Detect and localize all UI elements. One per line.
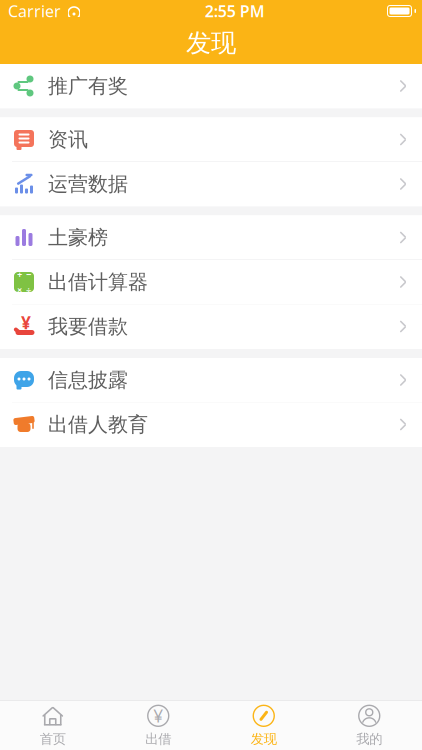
staticText: 土豪榜 — [48, 225, 108, 250]
staticText: 出借 — [145, 731, 171, 747]
staticText: ÷ — [26, 283, 31, 296]
button[interactable]: 信息披露 — [0, 358, 422, 402]
button[interactable]: 土豪榜 — [0, 215, 422, 260]
staticText: 信息披露 — [48, 368, 128, 392]
staticText: + — [17, 268, 22, 280]
staticText: 发现 — [251, 731, 277, 747]
button[interactable]: 首页 — [0, 701, 105, 750]
staticText: 推广有奖 — [48, 74, 128, 98]
staticText: 首页 — [40, 731, 66, 747]
staticText: 运营数据 — [48, 172, 128, 196]
staticText: ¥ — [153, 704, 163, 727]
staticText: 2:55 PM — [205, 0, 265, 22]
staticText: × — [17, 283, 22, 296]
button[interactable]: 运营数据 — [0, 162, 422, 206]
button[interactable]: ¥ — [0, 304, 422, 349]
staticText: 出借人教育 — [48, 412, 148, 437]
button[interactable]: 我的 — [316, 701, 422, 750]
staticText: 出借计算器 — [48, 270, 148, 294]
button[interactable]: + — [0, 260, 422, 304]
staticText: − — [26, 268, 31, 280]
staticText: 我的 — [356, 731, 382, 747]
button[interactable]: 出借人教育 — [0, 402, 422, 447]
button[interactable]: 推广有奖 — [0, 64, 422, 108]
staticText: ¥ — [21, 311, 31, 334]
staticText: 发现 — [186, 27, 236, 58]
button[interactable]: 发现 — [211, 701, 316, 750]
button[interactable]: 资讯 — [0, 117, 422, 162]
staticText: Carrier — [8, 0, 61, 22]
staticText: 我要借款 — [48, 314, 128, 339]
staticText: 资讯 — [48, 127, 88, 152]
button[interactable]: ¥ — [105, 701, 211, 750]
